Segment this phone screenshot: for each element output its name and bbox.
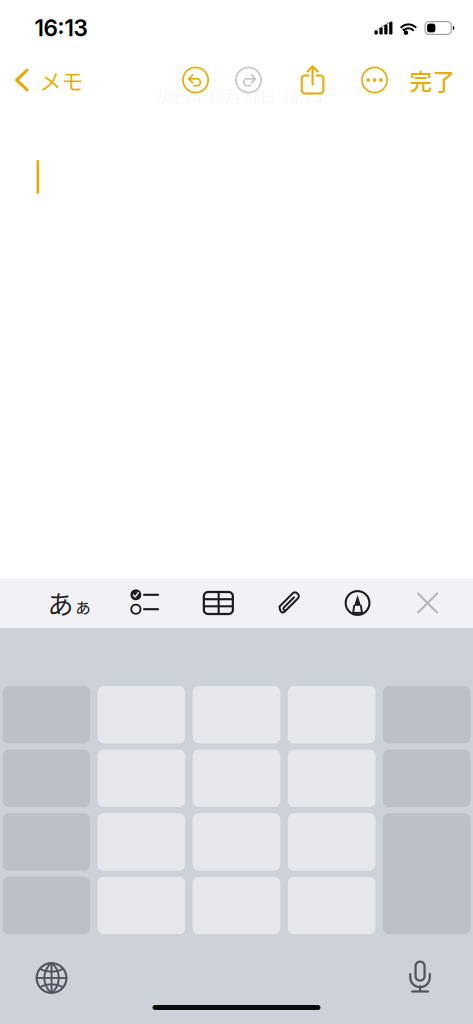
button[interactable]: 書式 [44, 578, 96, 628]
button[interactable]: やり直す [226, 58, 270, 102]
button[interactable]: マークアップ [331, 578, 383, 628]
staticText: ぁ [73, 592, 92, 619]
staticText: あ [47, 584, 73, 622]
staticText: 完了 [409, 64, 455, 96]
button[interactable]: 取り消す [173, 58, 217, 102]
button[interactable]: その他 [352, 58, 396, 102]
staticText: 2025年12月27日 16:13 [154, 84, 322, 108]
button[interactable]: 添付 [263, 578, 315, 628]
button[interactable]: 次のキーボード [29, 956, 73, 1000]
button[interactable]: 表 [192, 578, 244, 628]
button[interactable]: 音声入力 [398, 955, 442, 999]
staticText: メモ [39, 64, 83, 96]
button[interactable]: 完了 [405, 58, 459, 102]
staticText: 16:13 [34, 14, 87, 42]
button[interactable]: 共有 [290, 58, 334, 102]
button[interactable]: メモ [14, 58, 104, 102]
button[interactable]: 閉じる [401, 578, 453, 628]
button[interactable]: チェックリスト [121, 578, 173, 628]
